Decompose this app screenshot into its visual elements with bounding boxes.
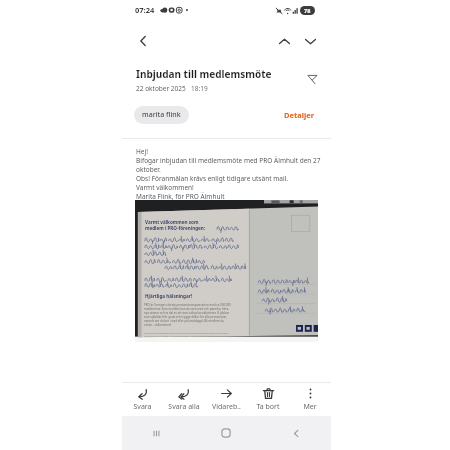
staticText: 07:24 bbox=[135, 5, 155, 15]
staticText: Detaljer bbox=[284, 110, 315, 120]
staticText: 22 oktober 2025 bbox=[136, 84, 186, 93]
button[interactable]: Next message bbox=[297, 28, 323, 54]
button[interactable]: Home bbox=[191, 416, 261, 450]
button[interactable]: Mer bbox=[289, 383, 331, 416]
staticText: Vidareb.. bbox=[212, 402, 241, 412]
staticText: 18:19 bbox=[191, 84, 208, 93]
staticText: Hej! Bifogar inbjudan till medlemsmöte m… bbox=[136, 147, 321, 201]
button[interactable]: Svara alla bbox=[163, 383, 205, 416]
staticText: Svara bbox=[133, 402, 152, 412]
button[interactable]: marita flink bbox=[134, 106, 189, 124]
staticText: marita flink bbox=[142, 110, 181, 120]
button[interactable]: Flag message bbox=[302, 68, 322, 88]
button[interactable]: Ta bort bbox=[247, 383, 289, 416]
staticText: medlem i PRO-föreningen: bbox=[145, 225, 206, 231]
button[interactable]: Back bbox=[261, 416, 331, 450]
staticText: Mer bbox=[303, 402, 317, 412]
staticText: 78 bbox=[304, 7, 311, 14]
staticText: Varmt välkommen som bbox=[145, 219, 199, 225]
button[interactable]: Back bbox=[130, 28, 156, 54]
staticText: Dina personuppgifter behandlas enligt da… bbox=[144, 331, 231, 338]
staticText: Ta bort bbox=[256, 402, 280, 412]
button[interactable]: Vidareb.. bbox=[205, 383, 247, 416]
staticText: PRO är Sveriges största pensionärsorgani… bbox=[144, 303, 231, 327]
staticText: Svara alla bbox=[168, 402, 200, 412]
button[interactable]: Recent apps bbox=[122, 416, 191, 450]
button[interactable]: Detaljer bbox=[282, 107, 317, 123]
staticText: Inbjudan till medlemsmöte bbox=[136, 67, 272, 81]
button[interactable]: Svara bbox=[122, 383, 163, 416]
staticText: Hjärtliga hälsningar! bbox=[145, 293, 193, 299]
button[interactable]: Previous message bbox=[271, 28, 297, 54]
